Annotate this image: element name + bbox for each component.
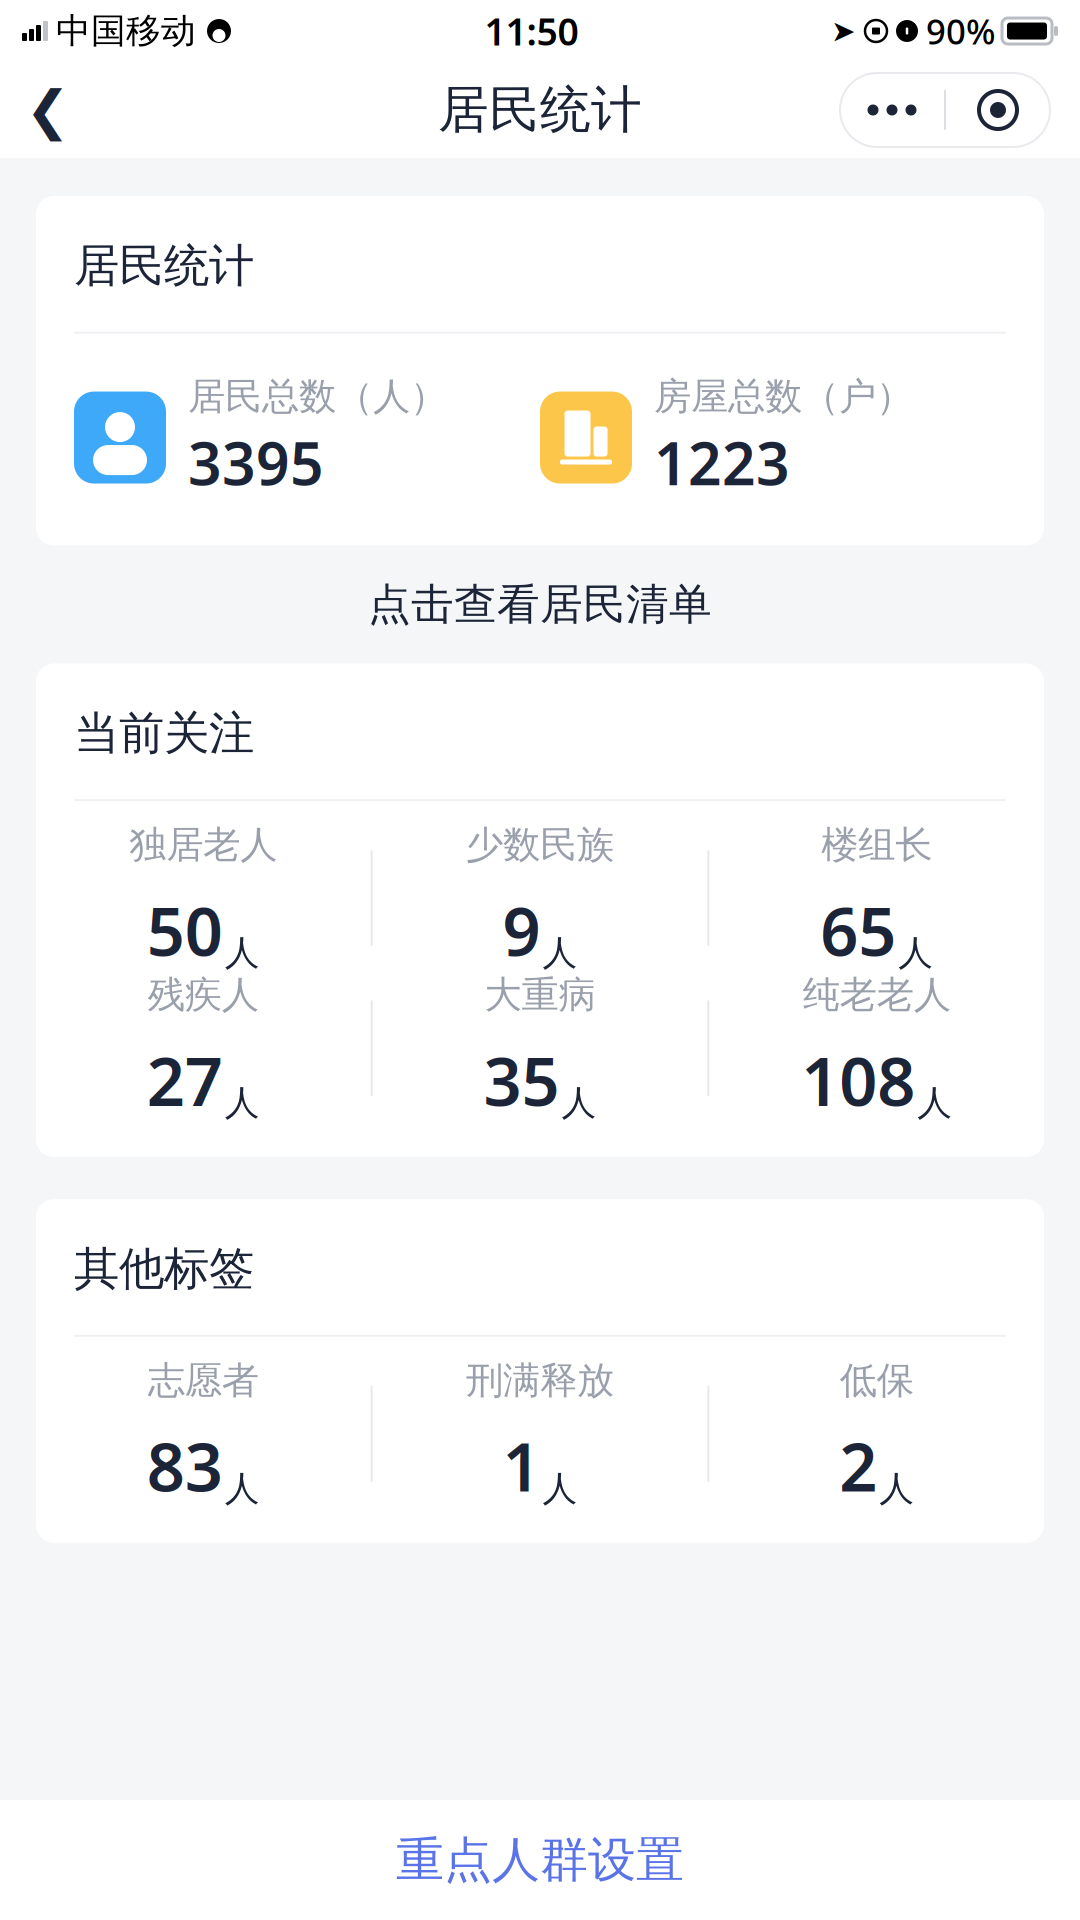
staticText: ❮ [25, 80, 70, 140]
staticText: 50 [147, 886, 223, 974]
staticText: 其他标签 [74, 1241, 254, 1297]
staticText: 人 [542, 932, 577, 974]
staticText: 3395 [188, 423, 324, 501]
staticText: 108 [801, 1036, 915, 1124]
staticText: 人 [225, 932, 260, 974]
staticText: 中国移动 [56, 10, 196, 52]
button[interactable]: 楼组长 [709, 823, 1044, 973]
button[interactable]: 纯老老人 [709, 973, 1044, 1123]
staticText: 点击查看居民清单 [368, 578, 712, 631]
button[interactable]: Back [0, 62, 96, 158]
staticText: 纯老老人 [803, 972, 951, 1018]
staticText: 楼组长 [821, 822, 932, 868]
staticText: 低保 [840, 1358, 914, 1403]
staticText: 2 [839, 1421, 877, 1510]
staticText: 11:50 [484, 6, 578, 56]
staticText: 房屋总数（户） [654, 374, 913, 420]
staticText: 居民统计 [438, 79, 642, 141]
staticText: 9 [502, 886, 540, 974]
button[interactable]: 独居老人 [36, 823, 371, 973]
staticText: 人 [561, 1082, 596, 1124]
staticText: 残疾人 [148, 972, 259, 1018]
button[interactable]: Target [946, 73, 1050, 147]
button[interactable]: 重点人群设置 [0, 1800, 1080, 1920]
staticText: 大重病 [484, 972, 595, 1018]
staticText: 人 [542, 1467, 577, 1510]
staticText: 居民总数（人） [188, 374, 447, 420]
staticText: 重点人群设置 [396, 1830, 684, 1889]
staticText: 志愿者 [148, 1358, 259, 1403]
staticText: 独居老人 [129, 822, 277, 868]
button[interactable]: More [840, 73, 944, 147]
staticText: 人 [917, 1082, 952, 1124]
button[interactable]: 残疾人 [36, 973, 371, 1123]
staticText: 90% [926, 8, 996, 54]
button[interactable]: 低保 [709, 1359, 1044, 1509]
button[interactable]: 点击查看居民清单 [36, 545, 1044, 663]
staticText: 27 [147, 1036, 223, 1124]
staticText: 人 [879, 1467, 914, 1510]
staticText: 居民统计 [74, 238, 254, 294]
staticText: 人 [225, 1082, 260, 1124]
staticText: 当前关注 [74, 705, 254, 761]
staticText: 人 [225, 1467, 260, 1510]
button[interactable]: 刑满释放 [373, 1359, 707, 1509]
staticText: 65 [820, 886, 896, 974]
staticText: 83 [147, 1421, 223, 1510]
button[interactable]: 志愿者 [36, 1359, 371, 1509]
staticText: 少数民族 [466, 822, 614, 868]
button[interactable]: 房屋总数（户） [540, 374, 1044, 501]
button[interactable]: 居民总数（人） [36, 374, 540, 501]
staticText: 1 [502, 1421, 540, 1510]
staticText: ➤ [831, 14, 856, 48]
staticText: 人 [898, 932, 933, 974]
staticText: 刑满释放 [466, 1358, 614, 1403]
staticText: 35 [483, 1036, 559, 1124]
staticText: 1223 [654, 423, 790, 501]
button[interactable]: 少数民族 [373, 823, 707, 973]
button[interactable]: 大重病 [373, 973, 707, 1123]
